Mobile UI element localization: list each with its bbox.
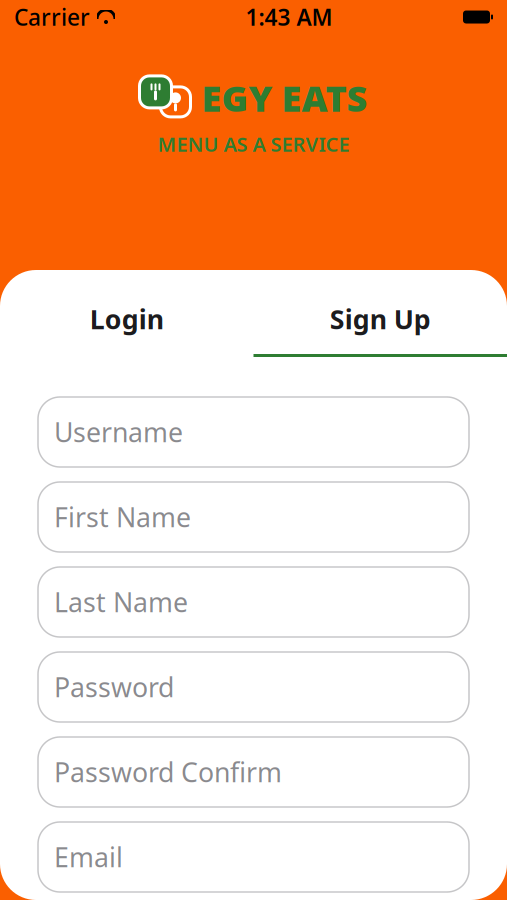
staticText: Login [90,301,164,337]
staticText: Password Confirm [54,754,282,790]
button[interactable]: Password [38,652,469,722]
staticText: EGY EATS [201,74,367,122]
staticText: Username [54,414,183,450]
button[interactable]: Sign Up [253,290,507,348]
button[interactable]: Email [38,822,469,892]
staticText: First Name [54,499,191,535]
staticText: Password [54,669,174,705]
button[interactable]: Login [0,290,253,348]
staticText: MENU AS A SERVICE [157,131,349,157]
staticText: 1:43 AM [245,2,332,32]
staticText: Sign Up [330,301,431,337]
button[interactable]: Password Confirm [38,737,469,807]
staticText: Last Name [54,584,188,620]
staticText: Email [54,839,123,875]
button[interactable]: First Name [38,482,469,552]
button[interactable]: Last Name [38,567,469,637]
button[interactable]: Username [38,397,469,467]
staticText: Carrier [14,2,90,32]
